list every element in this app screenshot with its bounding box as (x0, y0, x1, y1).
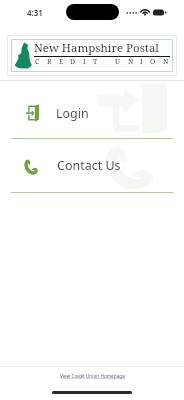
staticText: O (150, 57, 156, 67)
staticText: 4:31 (27, 7, 43, 18)
staticText: Login (56, 105, 89, 122)
staticText: New Hampshire Postal (34, 40, 159, 56)
button[interactable]: Contact Us (0, 139, 184, 193)
button[interactable]: Login (0, 88, 184, 139)
staticText: C (35, 57, 40, 67)
staticText: U (115, 57, 121, 67)
staticText: D (70, 57, 76, 67)
staticText: N (163, 57, 169, 67)
staticText: I (83, 57, 86, 67)
staticText: T (93, 57, 98, 67)
button[interactable]: View Credit Union Homepage (60, 373, 125, 379)
staticText: R (47, 57, 52, 67)
staticText: N (128, 57, 134, 67)
staticText: E (59, 57, 64, 67)
staticText: Contact Us (57, 157, 121, 174)
staticText: I (140, 57, 143, 67)
